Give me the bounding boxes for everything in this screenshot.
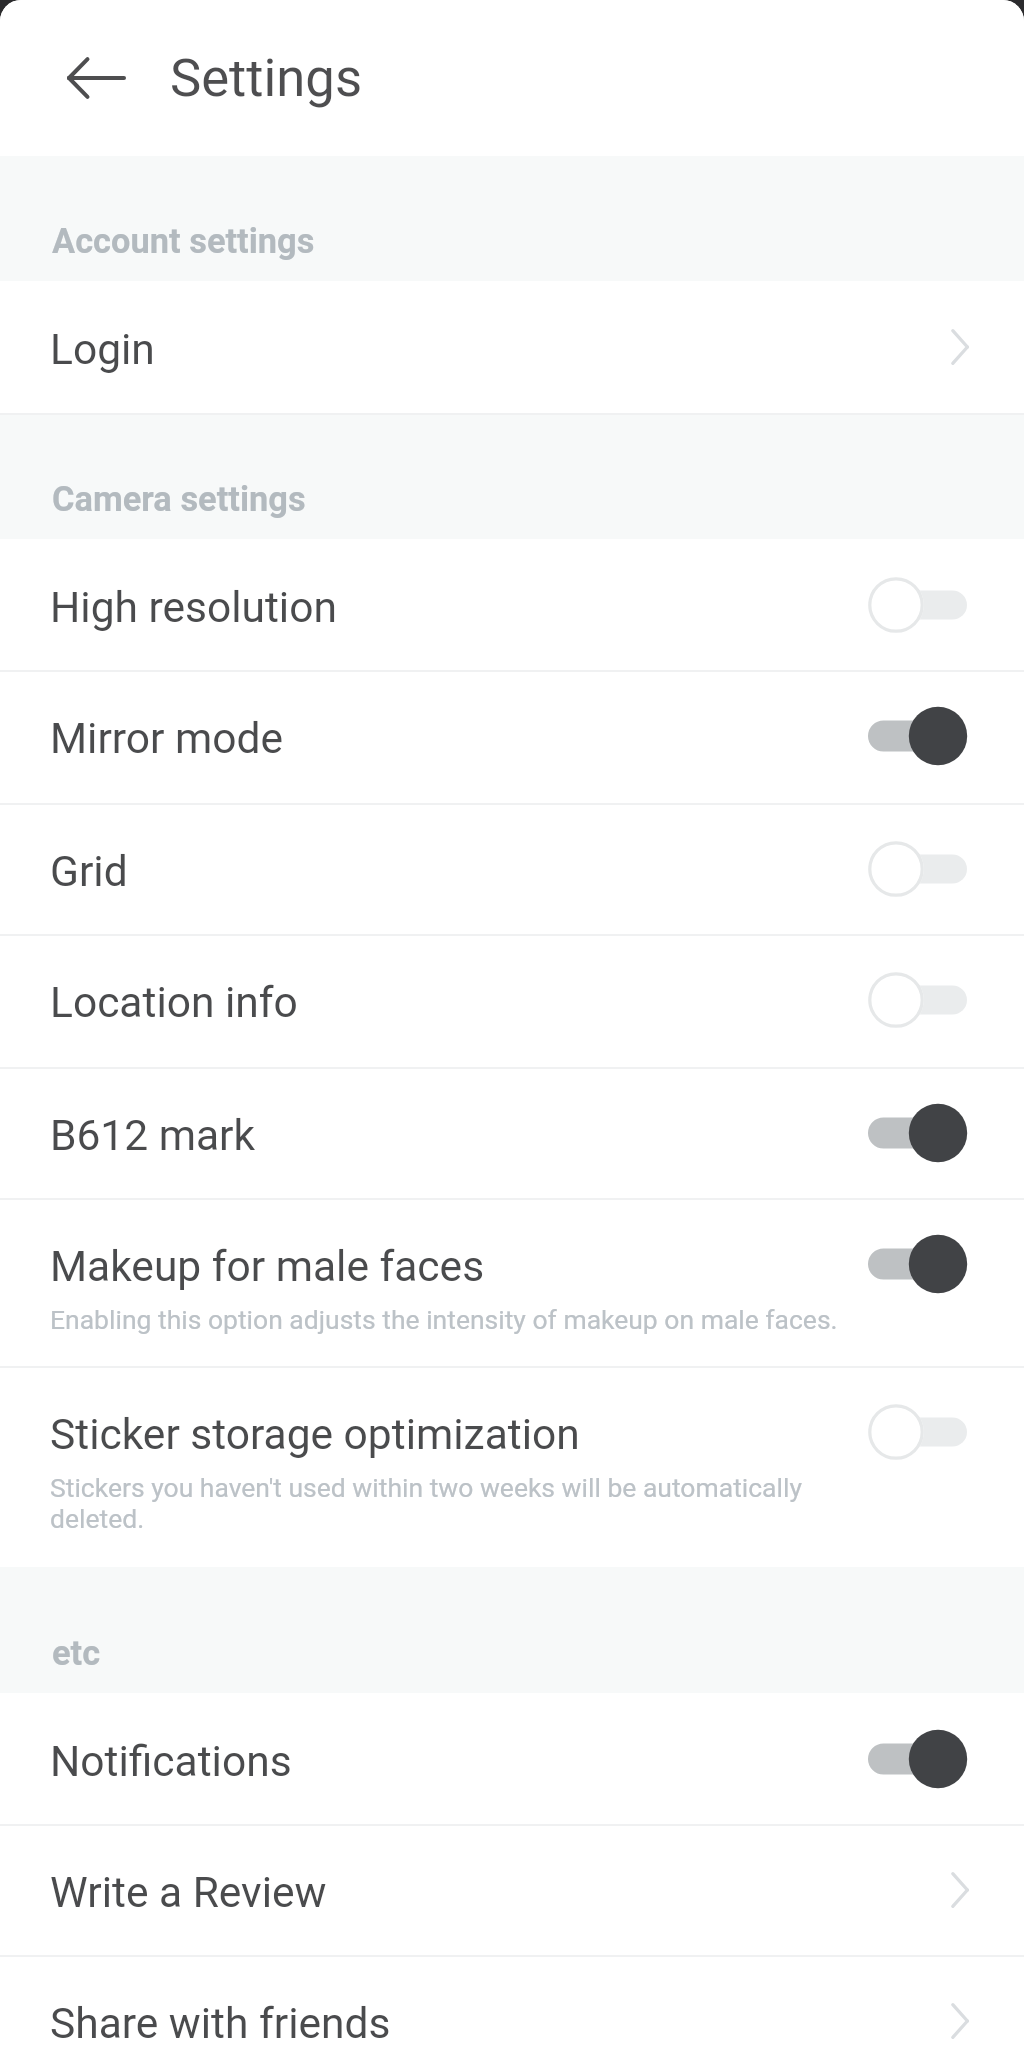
button[interactable]: Off (867, 834, 1024, 904)
staticText: Share with friends (50, 1999, 391, 2047)
button[interactable]: Write a Review (0, 1824, 1024, 1955)
button[interactable]: Login (0, 281, 1024, 413)
button[interactable]: B612 mark (0, 1067, 1024, 1198)
staticText: Location info (50, 978, 298, 1028)
staticText: Camera settings (52, 479, 306, 519)
staticText: Grid (50, 847, 128, 897)
staticText: Settings (170, 47, 363, 109)
button[interactable]: Makeup for male faces (0, 1198, 1024, 1366)
staticText: Sticker storage optimization (50, 1410, 580, 1460)
staticText: High resolution (50, 583, 337, 633)
staticText: Notifications (50, 1737, 292, 1787)
staticText: Account settings (52, 221, 315, 261)
staticText: etc (52, 1633, 101, 1673)
button[interactable]: High resolution (0, 539, 1024, 670)
button[interactable]: Sticker storage optimization (0, 1366, 1024, 1567)
staticText: Login (50, 325, 155, 375)
button[interactable]: Back (45, 45, 111, 111)
staticText: Mirror mode (50, 714, 284, 764)
button[interactable]: Grid (0, 803, 1024, 934)
button[interactable]: Mirror mode (0, 670, 1024, 803)
staticText: B612 mark (50, 1111, 256, 1161)
button[interactable]: Off (867, 570, 1024, 640)
staticText: Makeup for male faces (50, 1242, 485, 1292)
button[interactable]: Share with friends (0, 1955, 1024, 2047)
button[interactable]: On (867, 1229, 1024, 1299)
button[interactable]: On (867, 1098, 1024, 1168)
button[interactable]: Notifications (0, 1693, 1024, 1824)
staticText: Stickers you haven't used within two wee… (50, 1472, 870, 1534)
button[interactable]: Off (867, 1397, 1024, 1467)
button[interactable]: On (867, 1724, 1024, 1794)
staticText: Write a Review (50, 1868, 327, 1918)
staticText: Enabling this option adjusts the intensi… (50, 1304, 870, 1335)
button[interactable]: Off (867, 965, 1024, 1035)
button[interactable]: On (867, 701, 1024, 771)
button[interactable]: Location info (0, 934, 1024, 1067)
